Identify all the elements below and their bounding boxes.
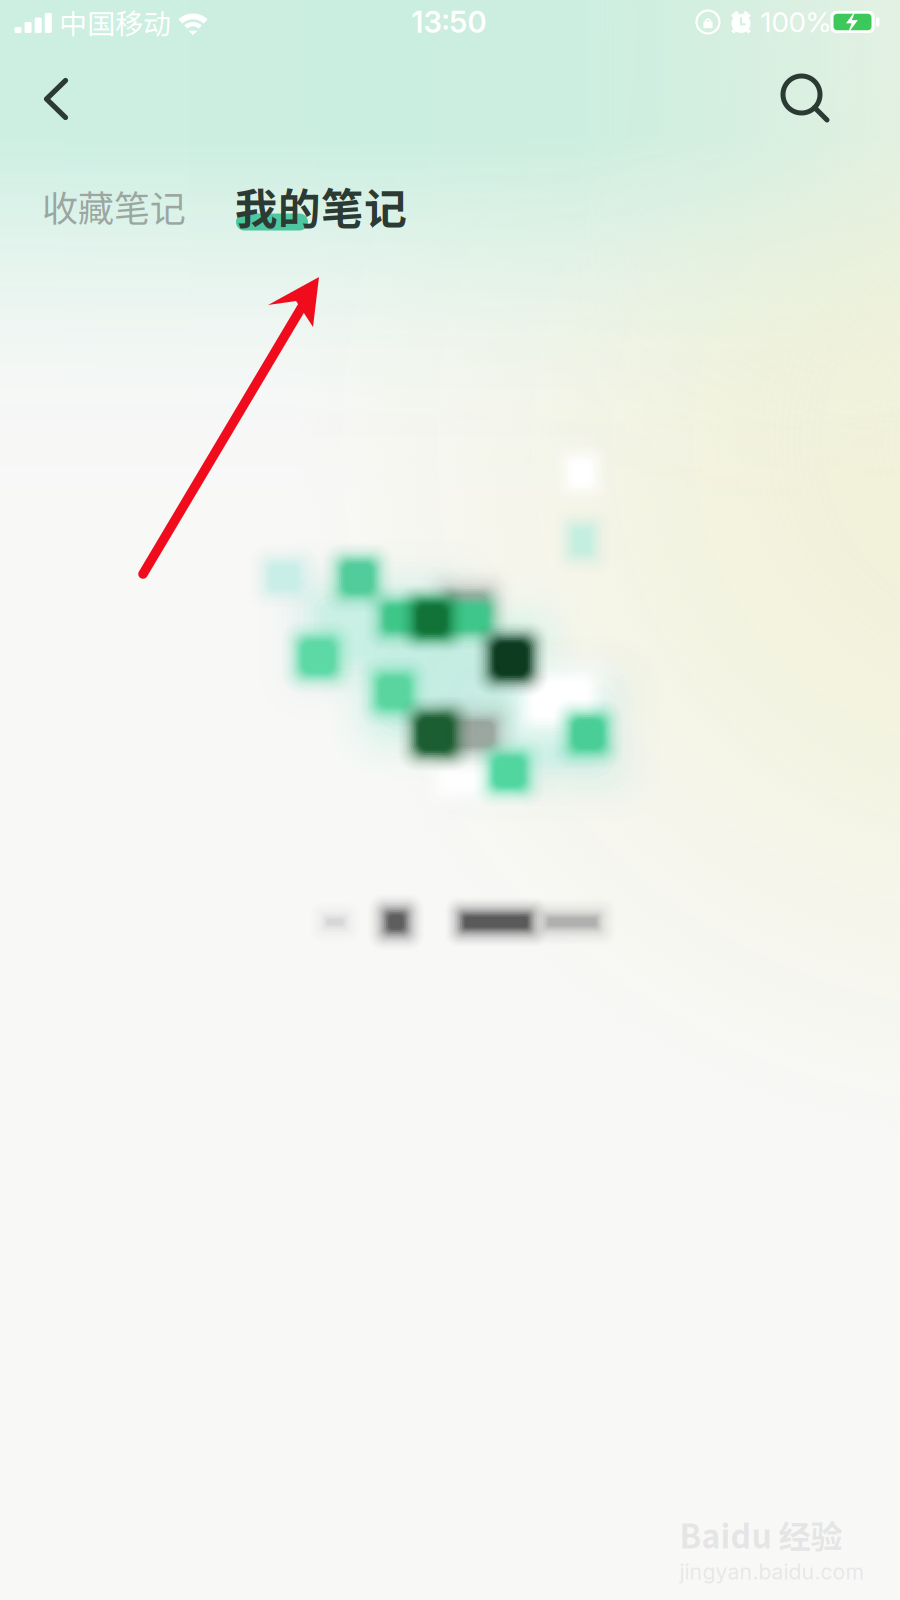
button[interactable]: Back	[16, 57, 96, 141]
button[interactable]: Search	[764, 57, 848, 141]
staticText: jingyan.baidu.com	[679, 1559, 864, 1585]
staticText: 收藏笔记	[42, 180, 186, 232]
staticText: 13:50	[411, 4, 486, 40]
staticText: 我的笔记	[235, 175, 407, 237]
staticText: Baidu 经验	[679, 1511, 842, 1558]
button[interactable]: 我的笔记	[221, 167, 421, 245]
staticText: 中国移动	[59, 2, 171, 42]
button[interactable]: 收藏笔记	[24, 167, 204, 245]
staticText: 100%	[760, 5, 831, 39]
